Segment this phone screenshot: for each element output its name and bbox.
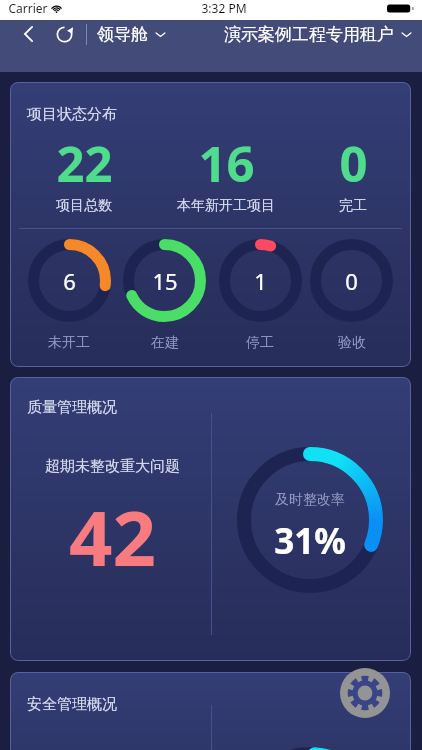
staticText: 未开工 bbox=[48, 334, 90, 352]
button[interactable]: 演示案例工程专用租户 bbox=[224, 24, 412, 45]
staticText: 验收 bbox=[338, 334, 366, 352]
staticText: 42 bbox=[69, 485, 156, 589]
staticText: 3:32 PM bbox=[201, 0, 247, 16]
staticText: 领导舱 bbox=[97, 24, 148, 45]
staticText: 本年新开工项目 bbox=[177, 197, 275, 215]
staticText: 15 bbox=[152, 266, 178, 296]
staticText: 1 bbox=[254, 266, 267, 296]
staticText: 完工 bbox=[339, 197, 367, 215]
staticText: 在建 bbox=[151, 334, 179, 352]
staticText: 0 bbox=[345, 266, 358, 296]
button[interactable]: 领导舱 bbox=[97, 24, 166, 45]
staticText: 质量管理概况 bbox=[27, 398, 117, 417]
staticText: Carrier bbox=[8, 0, 48, 16]
staticText: 演示案例工程专用租户 bbox=[224, 24, 394, 45]
staticText: 22 bbox=[56, 130, 113, 197]
staticText: 超期未整改重大问题 bbox=[45, 457, 180, 476]
staticText: 31% bbox=[274, 517, 346, 565]
staticText: 项目状态分布 bbox=[27, 105, 117, 124]
staticText: 项目总数 bbox=[56, 197, 112, 215]
staticText: 停工 bbox=[246, 334, 274, 352]
staticText: 6 bbox=[63, 266, 76, 296]
staticText: 安全管理概况 bbox=[27, 695, 117, 714]
button[interactable]: Back bbox=[14, 20, 42, 48]
button[interactable]: Refresh bbox=[50, 20, 78, 48]
button[interactable]: Settings bbox=[340, 668, 390, 718]
staticText: 及时整改率 bbox=[275, 491, 345, 509]
staticText: 16 bbox=[198, 130, 255, 197]
staticText: 0 bbox=[339, 130, 368, 197]
